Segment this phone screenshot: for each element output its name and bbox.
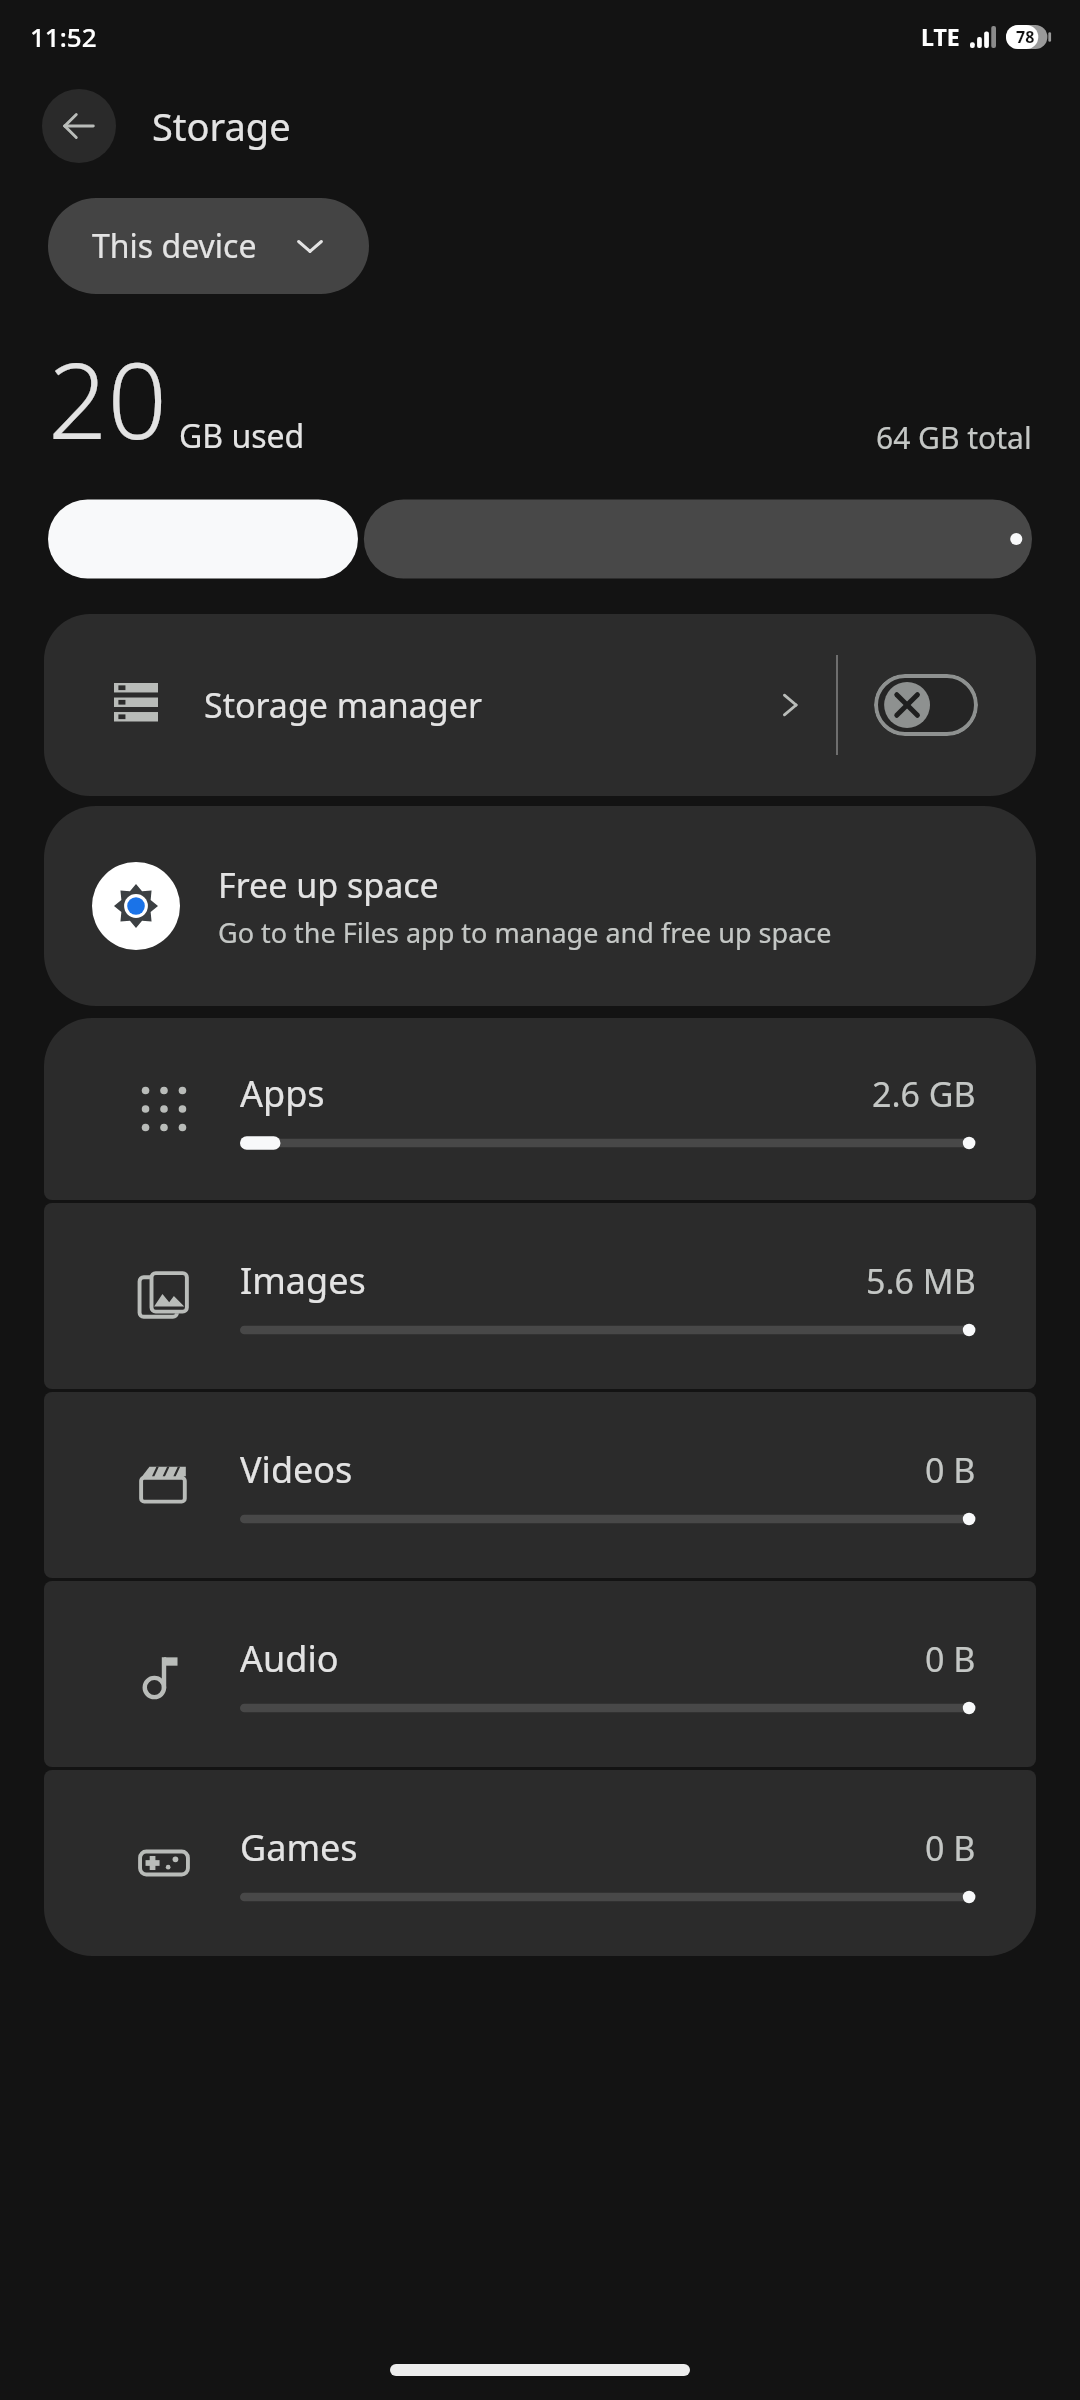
staticText: 0 B <box>925 1447 976 1493</box>
button[interactable]: Back <box>42 89 116 163</box>
staticText: Storage <box>152 100 291 152</box>
staticText: GB used <box>179 414 305 458</box>
staticText: Images <box>240 1256 366 1305</box>
staticText: 78 <box>1016 26 1035 48</box>
button[interactable]: Videos <box>44 1392 1036 1578</box>
button[interactable]: Games <box>44 1770 1036 1956</box>
staticText: Free up space <box>218 862 439 908</box>
staticText: Games <box>240 1823 358 1872</box>
staticText: 20 <box>48 328 167 470</box>
button[interactable]: Storage manager <box>44 614 1036 796</box>
staticText: Storage manager <box>204 682 776 728</box>
staticText: 2.6 GB <box>872 1071 976 1117</box>
staticText: Go to the Files app to manage and free u… <box>218 914 832 951</box>
staticText: 0 B <box>925 1636 976 1682</box>
button[interactable]: Free up space <box>44 806 1036 1006</box>
staticText: 0 B <box>925 1825 976 1871</box>
button[interactable]: Audio <box>44 1581 1036 1767</box>
button[interactable]: Images <box>44 1203 1036 1389</box>
staticText: This device <box>92 224 257 268</box>
staticText: 64 GB total <box>876 417 1032 458</box>
button[interactable]: Storage manager toggle <box>874 674 978 736</box>
staticText: Audio <box>240 1634 339 1683</box>
staticText: Apps <box>240 1069 325 1118</box>
button[interactable]: Apps <box>44 1018 1036 1200</box>
staticText: Videos <box>240 1445 353 1494</box>
staticText: LTE <box>921 21 960 52</box>
button[interactable]: This device <box>48 198 369 294</box>
staticText: 11:52 <box>30 19 97 54</box>
staticText: 5.6 MB <box>866 1258 976 1304</box>
